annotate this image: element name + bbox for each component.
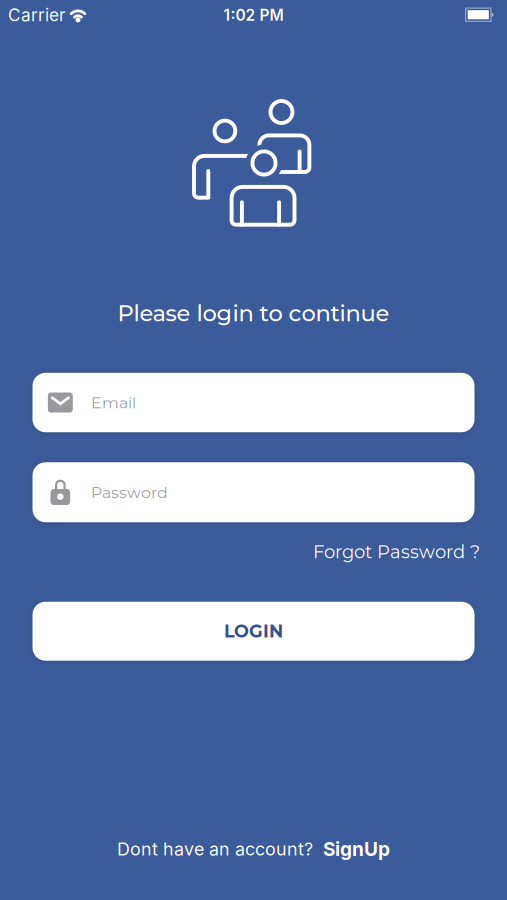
button[interactable]: Password — [32, 462, 474, 522]
button[interactable]: Dont have an account? — [117, 837, 390, 860]
staticText: LOGIN — [224, 620, 283, 642]
staticText: Password — [91, 483, 168, 502]
button[interactable]: Email — [32, 373, 474, 432]
staticText: Forgot Password ? — [313, 541, 480, 563]
staticText: Email — [91, 393, 136, 412]
button[interactable]: LOGIN — [32, 602, 474, 661]
staticText: SignUp — [323, 837, 390, 860]
staticText: Please login to continue — [117, 299, 389, 327]
button[interactable]: Forgot Password ? — [313, 541, 480, 563]
staticText: Dont have an account? — [117, 838, 313, 860]
staticText: 1:02 PM — [223, 6, 283, 24]
staticText: Carrier — [8, 5, 65, 25]
